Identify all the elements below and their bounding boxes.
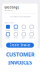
button[interactable]: Report — [28, 32, 35, 39]
staticText: CUSTOMER — [6, 51, 34, 58]
staticText: Items — [22, 29, 25, 31]
staticText: Report — [29, 37, 34, 39]
staticText: Clients — [14, 29, 18, 31]
button[interactable]: Taxes — [12, 32, 19, 39]
staticText: Create Invoice — [9, 43, 30, 47]
button[interactable]: Invoice — [4, 25, 11, 31]
button[interactable]: Items — [20, 25, 27, 31]
staticText: Everything you need to get paid — [9, 16, 30, 18]
button[interactable]: Quotes — [4, 32, 11, 39]
staticText: Quotes — [5, 37, 10, 39]
button[interactable]: Clients — [12, 25, 19, 31]
staticText: QUICK ACTIONS — [4, 22, 14, 24]
staticText: Invoice — [5, 29, 10, 31]
staticText: INVOICES — [8, 59, 32, 66]
button[interactable]: Create Invoice — [6, 43, 34, 48]
staticText: Greetings, — [4, 6, 19, 9]
staticText: Stock — [22, 37, 26, 39]
staticText: Alex Morgan — [4, 10, 13, 11]
staticText: Taxes — [13, 37, 18, 39]
button[interactable]: More — [28, 25, 35, 31]
button[interactable]: Stock — [20, 32, 27, 39]
staticText: More — [30, 29, 34, 31]
